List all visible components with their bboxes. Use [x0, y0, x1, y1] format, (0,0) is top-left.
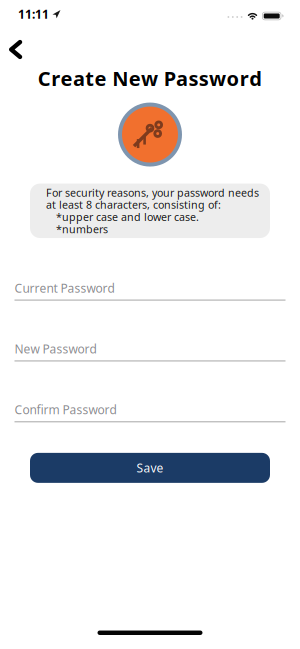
staticText: Save	[136, 460, 163, 476]
staticText: Current Password	[14, 280, 114, 296]
staticText: *upper case and lower case.	[56, 210, 199, 224]
button[interactable]: Back	[9, 40, 22, 59]
staticText: at least 8 characters, consisting of:	[46, 198, 221, 212]
staticText: New Password	[14, 341, 96, 357]
button[interactable]: Current Password	[14, 280, 285, 301]
staticText: 11:11	[18, 6, 49, 22]
staticText: *numbers	[56, 222, 108, 236]
button[interactable]: New Password	[14, 341, 285, 361]
button[interactable]: Save	[30, 453, 270, 483]
staticText: For security reasons, your password need…	[46, 185, 259, 200]
button[interactable]: Confirm Password	[14, 402, 285, 422]
staticText: Confirm Password	[14, 402, 116, 418]
staticText: Create New Password	[38, 65, 262, 92]
